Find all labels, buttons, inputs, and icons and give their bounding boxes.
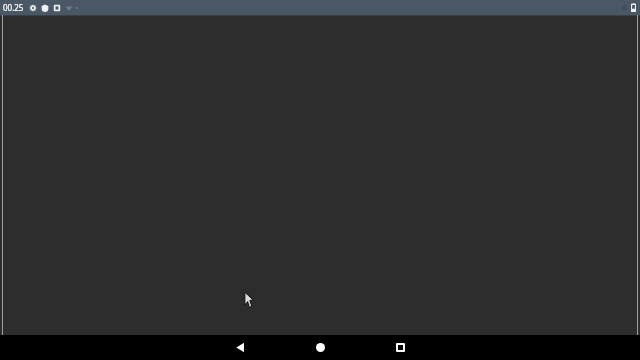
button[interactable]: Home xyxy=(296,335,344,360)
staticText: 00.25 xyxy=(3,2,24,13)
button[interactable]: Back xyxy=(216,335,264,360)
button[interactable]: Recent apps xyxy=(376,335,424,360)
